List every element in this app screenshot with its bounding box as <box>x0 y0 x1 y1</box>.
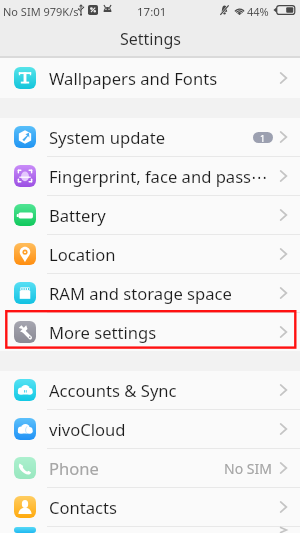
staticText: 1 <box>260 132 266 143</box>
staticText: 17:01 <box>137 4 167 20</box>
button[interactable]: Settings <box>0 22 300 56</box>
staticText: No SIM <box>224 459 272 478</box>
button[interactable]: System update <box>0 118 300 156</box>
button[interactable]: More settings <box>0 313 300 351</box>
button[interactable]: Fingerprint, face and pass⋯ <box>0 157 300 195</box>
staticText: More settings <box>49 321 279 344</box>
staticText: vivoCloud <box>49 418 279 441</box>
staticText: Accounts & Sync <box>49 379 279 402</box>
staticText: 44% <box>247 4 269 19</box>
staticText: Location <box>49 243 279 266</box>
staticText: System update <box>49 126 253 149</box>
button[interactable]: Location <box>0 235 300 273</box>
button[interactable]: Contacts <box>0 488 300 526</box>
button[interactable]: Battery <box>0 196 300 234</box>
staticText: Settings <box>120 28 181 50</box>
button[interactable]: Phone <box>0 449 300 487</box>
staticText: Contacts <box>49 496 279 519</box>
staticText: Fingerprint, face and pass⋯ <box>49 165 279 188</box>
staticText: RAM and storage space <box>49 282 279 305</box>
staticText: Wallpapers and Fonts <box>49 67 279 90</box>
button[interactable]: Accounts & Sync <box>0 371 300 409</box>
staticText: Phone <box>49 457 224 480</box>
button[interactable]: RAM and storage space <box>0 274 300 312</box>
button[interactable] <box>0 527 300 533</box>
button[interactable]: vivoCloud <box>0 410 300 448</box>
button[interactable]: Wallpapers and Fonts <box>0 58 300 98</box>
staticText: Battery <box>49 204 279 227</box>
staticText: No SIM 979K/s <box>3 4 79 19</box>
